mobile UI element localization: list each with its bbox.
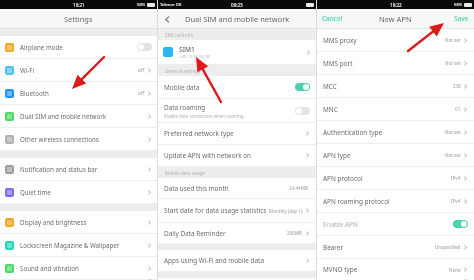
button[interactable]: Bluetooth [0,82,157,104]
staticText: Not set [445,152,461,158]
staticText: Enable APN [323,220,358,229]
staticText: Quiet time [20,188,145,196]
button[interactable]: Bearer [317,236,474,258]
staticText: Save [454,14,469,23]
staticText: Not set [445,37,461,43]
button[interactable]: MNC [317,98,474,120]
staticText: Monthly (day 1) [269,208,303,214]
staticText: Telenor DK [160,2,182,8]
staticText: off [138,90,145,97]
staticText: Data used this month [164,184,229,193]
staticText: Enable data connection when roaming [164,113,244,119]
button[interactable]: Data roaming [158,99,316,122]
button[interactable]: Data used this month [158,178,316,198]
staticText: Bearer [323,243,344,252]
staticText: Mobile data [164,83,200,92]
button[interactable]: Apps using Wi-Fi and mobile data [158,250,316,271]
button[interactable]: Wi-Fi [0,59,157,81]
button[interactable]: Lockscreen Magazine & Wallpaper [0,234,157,256]
staticText: Settings [64,14,93,24]
staticText: Display and brightness [20,218,145,226]
button[interactable]: Enable APN [317,213,474,235]
staticText: IPv4 [451,198,461,204]
staticText: Not set [445,60,461,66]
button[interactable]: Start date for data usage statistics [158,199,316,222]
button[interactable]: Save [454,14,469,23]
staticText: Mobile data usage [165,170,205,176]
button[interactable]: MCC [317,75,474,97]
staticText: Notification and status bar [20,165,145,173]
staticText: 68% [137,2,146,8]
staticText: +45 12 34 56 78 [179,54,210,60]
staticText: Bluetooth [20,89,138,97]
button[interactable]: MMS port [317,52,474,74]
button[interactable]: APN protocol [317,167,474,189]
staticText: Lockscreen Magazine & Wallpaper [20,241,145,249]
staticText: Sound and vibration [20,264,145,272]
staticText: MVNO type [323,265,358,274]
button[interactable]: Back [158,10,176,28]
staticText: 24.44MB [289,185,308,191]
button[interactable]: Quiet time [0,181,157,203]
button[interactable]: Authentication type [317,121,474,143]
staticText: Wi-Fi [20,66,138,74]
staticText: Airplane mode [20,43,137,51]
staticText: 09:23 [231,2,243,8]
staticText: Other wireless connections [20,135,145,143]
staticText: Unspecified [435,244,461,250]
staticText: Start date for data usage statistics [164,206,267,215]
staticText: 68% [454,2,463,8]
staticText: SIM card info [165,32,194,38]
staticText: MMS proxy [323,36,357,45]
staticText: Dual SIM and mobile network [185,14,290,24]
button[interactable]: Other wireless connections [0,128,157,150]
button[interactable]: On [453,220,468,228]
staticText: Preferred network type [164,129,234,138]
button[interactable]: Display and brightness [0,211,157,233]
button[interactable]: Daily Data Reminder [158,223,316,243]
staticText: APN roaming protocol [323,197,390,206]
button[interactable]: Off [137,43,152,51]
staticText: Authentication type [323,128,382,137]
staticText: Apps using Wi-Fi and mobile data [164,256,265,265]
button[interactable]: Dual SIM and mobile network [0,105,157,127]
staticText: 16:22 [390,2,402,8]
button[interactable]: On [295,83,310,91]
button[interactable]: MMS proxy [317,29,474,51]
staticText: MMS port [323,59,353,68]
staticText: New APN [379,14,412,24]
button[interactable]: APN type [317,144,474,166]
staticText: 200MB [287,230,303,236]
staticText: Daily Data Reminder [164,229,226,238]
staticText: None [449,267,461,273]
button[interactable]: Mobile data [158,76,316,98]
button[interactable]: SIM1 [158,40,316,64]
button[interactable]: Sound and vibration [0,257,157,279]
button[interactable]: MVNO type [317,259,474,280]
button[interactable]: Cancel [322,14,343,23]
button[interactable]: APN roaming protocol [317,190,474,212]
staticText: Dual SIM and mobile network [20,112,145,120]
button[interactable]: Off [295,107,310,115]
staticText: SIM1 [179,45,195,54]
staticText: APN protocol [323,174,363,183]
staticText: Update APN with network on [164,151,252,160]
staticText: Not set [445,129,461,135]
staticText: off [138,67,145,74]
staticText: APN type [323,151,351,160]
staticText: MCC [323,82,337,91]
staticText: IPv4 [451,175,461,181]
staticText: 01 [455,106,461,112]
staticText: 16:21 [73,2,85,8]
button[interactable]: Preferred network type [158,123,316,144]
staticText: Data roaming [164,103,206,112]
button[interactable]: Airplane mode [0,36,157,58]
staticText: Cancel [322,14,343,23]
staticText: 238 [453,83,461,89]
staticText: MNC [323,105,338,114]
button[interactable]: Update APN with network on [158,145,316,166]
button[interactable]: Notification and status bar [0,158,157,180]
staticText: General settings [165,68,201,74]
